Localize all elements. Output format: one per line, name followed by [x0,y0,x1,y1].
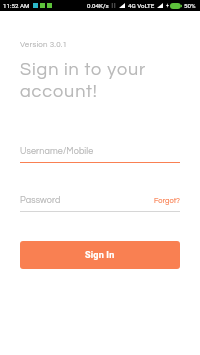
staticText: Sign In [85,250,115,261]
staticText: 11:52 AM [3,2,30,9]
staticText: Version 3.0.1 [20,40,68,48]
button[interactable]: Password [20,196,180,212]
button[interactable]: Sign In [20,241,180,269]
button[interactable]: Forgot? [154,197,180,205]
button[interactable]: Username/Mobile [20,147,180,163]
staticText: 0.04K/s [87,2,109,9]
staticText: 4G VoLTE [128,2,155,9]
staticText: 50% [184,2,196,9]
staticText: Username/Mobile [20,147,94,156]
staticText: Sign in to your account! [20,60,147,100]
staticText: Password [20,196,154,205]
